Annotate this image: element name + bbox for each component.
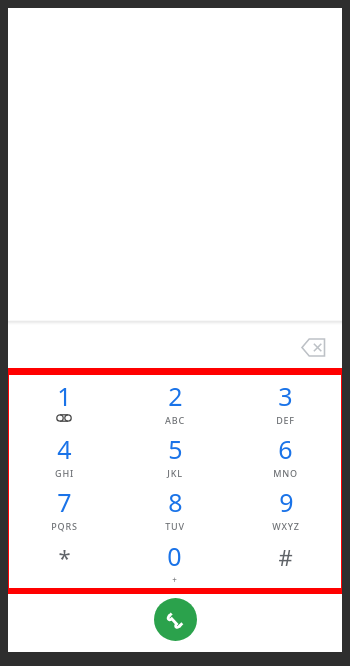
staticText: 3: [278, 379, 293, 413]
staticText: 7: [57, 485, 72, 519]
staticText: WXYZ: [272, 520, 300, 532]
button[interactable]: #: [230, 535, 341, 588]
button[interactable]: Call: [154, 598, 197, 641]
staticText: ABC: [165, 414, 185, 426]
staticText: 0: [167, 539, 182, 573]
button[interactable]: *: [9, 535, 119, 588]
button[interactable]: 1: [9, 375, 119, 429]
staticText: 9: [279, 485, 294, 519]
button[interactable]: 6: [230, 429, 341, 482]
staticText: 8: [168, 485, 183, 519]
staticText: 4: [57, 432, 72, 466]
button[interactable]: 8: [119, 482, 230, 535]
staticText: +: [172, 574, 177, 585]
staticText: *: [58, 542, 71, 572]
staticText: JKL: [167, 467, 183, 479]
staticText: 6: [278, 432, 293, 466]
button[interactable]: Backspace: [296, 329, 332, 365]
button[interactable]: 3: [230, 375, 341, 429]
staticText: GHI: [55, 467, 74, 479]
button[interactable]: 7: [9, 482, 119, 535]
button[interactable]: 2: [119, 375, 230, 429]
staticText: PQRS: [51, 520, 78, 532]
staticText: TUV: [165, 520, 185, 532]
staticText: MNO: [273, 467, 298, 479]
button[interactable]: 0: [119, 535, 230, 588]
staticText: 1: [57, 379, 72, 413]
staticText: DEF: [276, 414, 295, 426]
button[interactable]: 9: [230, 482, 341, 535]
staticText: 2: [168, 379, 183, 413]
button[interactable]: 4: [9, 429, 119, 482]
staticText: #: [278, 542, 293, 572]
button[interactable]: 5: [119, 429, 230, 482]
staticText: 5: [168, 432, 183, 466]
